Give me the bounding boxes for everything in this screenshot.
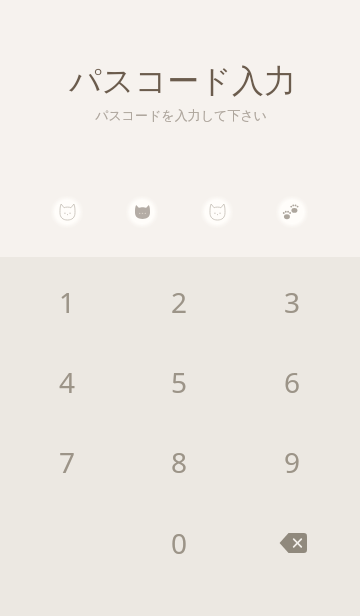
button[interactable]: 1 bbox=[11, 262, 123, 342]
button[interactable]: 5 bbox=[123, 342, 236, 422]
staticText: 2 bbox=[171, 283, 188, 321]
staticText: 6 bbox=[284, 363, 301, 401]
staticText: 8 bbox=[171, 443, 188, 481]
staticText: 7 bbox=[59, 443, 76, 481]
staticText: 3 bbox=[284, 283, 301, 321]
button[interactable]: 4 bbox=[11, 342, 123, 422]
button[interactable]: 3 bbox=[236, 262, 349, 342]
button[interactable]: Delete bbox=[236, 503, 349, 583]
staticText: 5 bbox=[171, 363, 188, 401]
staticText: パスコードを入力して下さい bbox=[95, 107, 267, 123]
button[interactable]: 2 bbox=[123, 262, 236, 342]
button[interactable]: 7 bbox=[11, 422, 123, 502]
button[interactable]: 0 bbox=[123, 503, 236, 583]
staticText: 4 bbox=[59, 363, 76, 401]
staticText: 1 bbox=[59, 283, 76, 321]
staticText: パスコード入力 bbox=[69, 61, 296, 101]
staticText: 0 bbox=[171, 524, 188, 562]
button[interactable]: 6 bbox=[236, 342, 349, 422]
staticText: 9 bbox=[284, 443, 301, 481]
button[interactable]: 8 bbox=[123, 422, 236, 502]
button[interactable]: 9 bbox=[236, 422, 349, 502]
